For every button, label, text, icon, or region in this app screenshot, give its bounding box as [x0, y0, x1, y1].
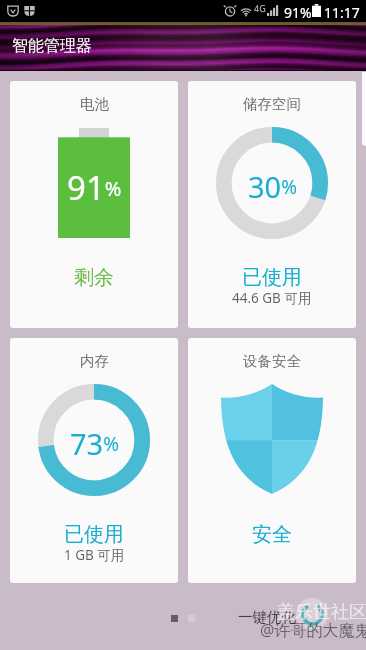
staticText: 91% — [284, 3, 312, 22]
button[interactable]: 电池 — [10, 81, 178, 328]
staticText: 91% — [67, 165, 122, 210]
staticText: 11:17 — [324, 3, 360, 22]
button[interactable]: 储存空间 — [188, 81, 356, 328]
staticText: 内存 — [80, 352, 109, 370]
staticText: 储存空间 — [243, 95, 301, 113]
staticText: 智能管理器 — [12, 36, 92, 56]
staticText: @许哥的大魔鬼 — [260, 619, 366, 641]
staticText: 4G — [254, 2, 266, 14]
staticText: 剩余 — [74, 265, 114, 290]
staticText: 盖乐世社区 — [277, 601, 366, 624]
staticText: 1 GB 可用 — [64, 546, 125, 564]
staticText: 73% — [70, 424, 119, 463]
staticText: 已使用 — [242, 265, 302, 290]
staticText: 已使用 — [64, 522, 124, 547]
staticText: 一键优化 — [238, 608, 296, 626]
staticText: 电池 — [80, 95, 109, 113]
staticText: 44.6 GB 可用 — [232, 289, 312, 307]
button[interactable]: 内存 — [10, 338, 178, 583]
staticText: 30% — [248, 167, 297, 206]
staticText: 设备安全 — [243, 352, 301, 370]
staticText: 安全 — [252, 522, 292, 547]
button[interactable]: 设备安全 — [188, 338, 356, 583]
button[interactable]: 一键优化 — [238, 606, 296, 627]
